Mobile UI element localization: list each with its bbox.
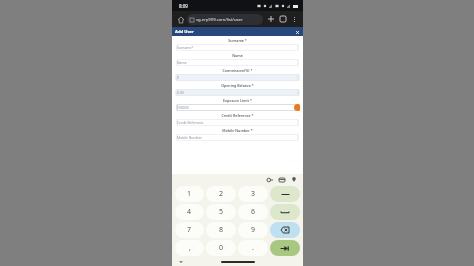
button[interactable]: Opening Balance * (175, 81, 300, 96)
staticText: 6 (251, 207, 256, 217)
button[interactable]: Commission(%) * (175, 66, 300, 81)
staticText: . (252, 243, 254, 253)
button[interactable]: Close (294, 29, 300, 35)
button[interactable]: Exposure Limit * (175, 96, 300, 111)
staticText: 1 (187, 189, 192, 199)
button[interactable]: 3 (238, 186, 268, 202)
button[interactable]: 2 (206, 186, 236, 202)
staticText: Commission(%) * (175, 68, 300, 73)
button[interactable]: Home (176, 15, 185, 24)
button[interactable]: Mobile Number * (175, 126, 300, 141)
button[interactable]: 1 (175, 186, 204, 202)
button[interactable]: 8 (206, 222, 236, 238)
button[interactable]: Payment methods (277, 175, 286, 184)
button[interactable]: Space (270, 204, 300, 220)
staticText: Surname* (177, 45, 194, 50)
button[interactable]: 4 (175, 204, 204, 220)
staticText: Add User (175, 29, 194, 35)
staticText: Name (175, 53, 300, 58)
staticText: 7 (187, 225, 192, 235)
button[interactable]: sg.erp999.com/list/user (187, 14, 263, 25)
staticText: 0.00 (177, 90, 184, 95)
button[interactable]: Minus (270, 186, 300, 202)
button[interactable]: Credit Reference * (175, 111, 300, 126)
staticText: 8:09 (179, 3, 188, 9)
button[interactable]: 9 (238, 222, 268, 238)
staticText: Credit Reference * (175, 113, 300, 118)
button[interactable]: 0 (206, 240, 236, 256)
staticText: 100000 (177, 105, 189, 110)
button[interactable]: 6 (238, 204, 268, 220)
staticText: 3 (251, 189, 256, 199)
button[interactable]: More options (290, 15, 299, 24)
button[interactable]: Passwords (265, 175, 274, 184)
button[interactable]: Enter (270, 240, 300, 256)
button[interactable]: Surname * (175, 36, 300, 51)
button[interactable]: Addresses (289, 175, 298, 184)
staticText: 8 (219, 225, 224, 235)
staticText: sg.erp999.com/list/user (196, 17, 243, 23)
staticText: 9 (251, 225, 256, 235)
button[interactable]: . (238, 240, 268, 256)
button[interactable]: Backspace (270, 222, 300, 238)
staticText: Mobile Number (177, 135, 202, 140)
staticText: 4 (187, 207, 192, 217)
staticText: Credit Reference (177, 120, 204, 125)
button[interactable]: Name (175, 51, 300, 66)
staticText: Opening Balance * (175, 83, 300, 88)
staticText: Mobile Number * (175, 128, 300, 133)
staticText: 0 (219, 243, 224, 253)
button[interactable]: Tabs (278, 14, 288, 24)
staticText: 5 (219, 207, 224, 217)
staticText: Exposure Limit * (175, 98, 300, 103)
button[interactable]: , (175, 240, 204, 256)
button[interactable]: 5 (206, 204, 236, 220)
staticText: Name (177, 60, 187, 65)
staticText: 2 (219, 189, 224, 199)
button[interactable]: New tab (266, 14, 276, 24)
staticText: Surname * (175, 38, 300, 43)
staticText: 0 (177, 75, 179, 80)
button[interactable]: 7 (175, 222, 204, 238)
staticText: , (189, 243, 191, 253)
